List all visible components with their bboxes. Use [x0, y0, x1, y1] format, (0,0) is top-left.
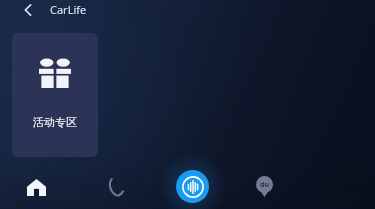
button[interactable]: 活动专区: [12, 33, 98, 157]
staticText: du: [260, 180, 269, 190]
staticText: CarLife: [50, 2, 87, 17]
button[interactable]: Voice assistant: [176, 170, 209, 203]
button[interactable]: Navigation: [247, 169, 281, 203]
button[interactable]: Phone: [98, 170, 134, 204]
button[interactable]: Home: [18, 170, 54, 204]
button[interactable]: Back: [14, 0, 42, 20]
staticText: 活动专区: [33, 115, 77, 129]
